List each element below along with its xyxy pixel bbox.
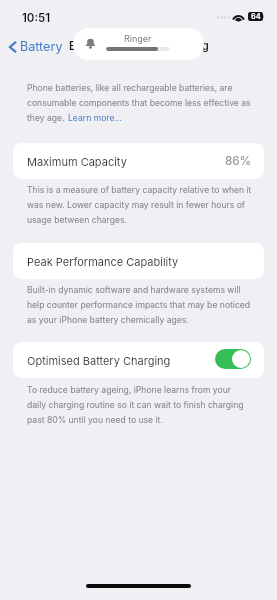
- staticText: Battery Health & Charging: [69, 39, 209, 53]
- staticText: daily charging routine so it can wait to…: [27, 400, 244, 410]
- staticText: 86%: [225, 154, 252, 168]
- staticText: past 80% until you need to use it.: [27, 415, 163, 425]
- button[interactable]: Learn more…: [68, 113, 122, 123]
- staticText: Peak Performance Capability: [27, 255, 179, 268]
- staticText: To reduce battery ageing, iPhone learns …: [27, 385, 231, 395]
- button[interactable]: Optimised Battery Charging toggle: [215, 349, 251, 369]
- staticText: Ringer: [124, 33, 152, 44]
- staticText: Optimised Battery Charging: [27, 354, 171, 367]
- button[interactable]: Peak Performance Capability: [13, 243, 264, 279]
- staticText: as your iPhone battery chemically ages.: [27, 315, 189, 325]
- staticText: 64: [251, 12, 261, 21]
- button[interactable]: Maximum Capacity: [13, 143, 264, 179]
- staticText: Built-in dynamic software and hardware s…: [27, 285, 241, 295]
- staticText: Phone batteries, like all rechargeable b…: [27, 83, 233, 93]
- staticText: 10:51: [22, 11, 51, 25]
- staticText: help counter performance impacts that ma…: [27, 300, 251, 310]
- staticText: This is a measure of battery capacity re…: [27, 185, 252, 195]
- staticText: was new. Lower capacity may result in fe…: [27, 200, 246, 210]
- button[interactable]: Back to Battery: [9, 38, 63, 55]
- button[interactable]: Optimised Battery Charging: [13, 342, 264, 378]
- staticText: usage between charges.: [27, 215, 127, 225]
- staticText: Maximum Capacity: [27, 155, 127, 168]
- staticText: they age.: [27, 113, 65, 123]
- staticText: consumable components that become less e…: [27, 98, 251, 108]
- staticText: Battery: [20, 39, 63, 54]
